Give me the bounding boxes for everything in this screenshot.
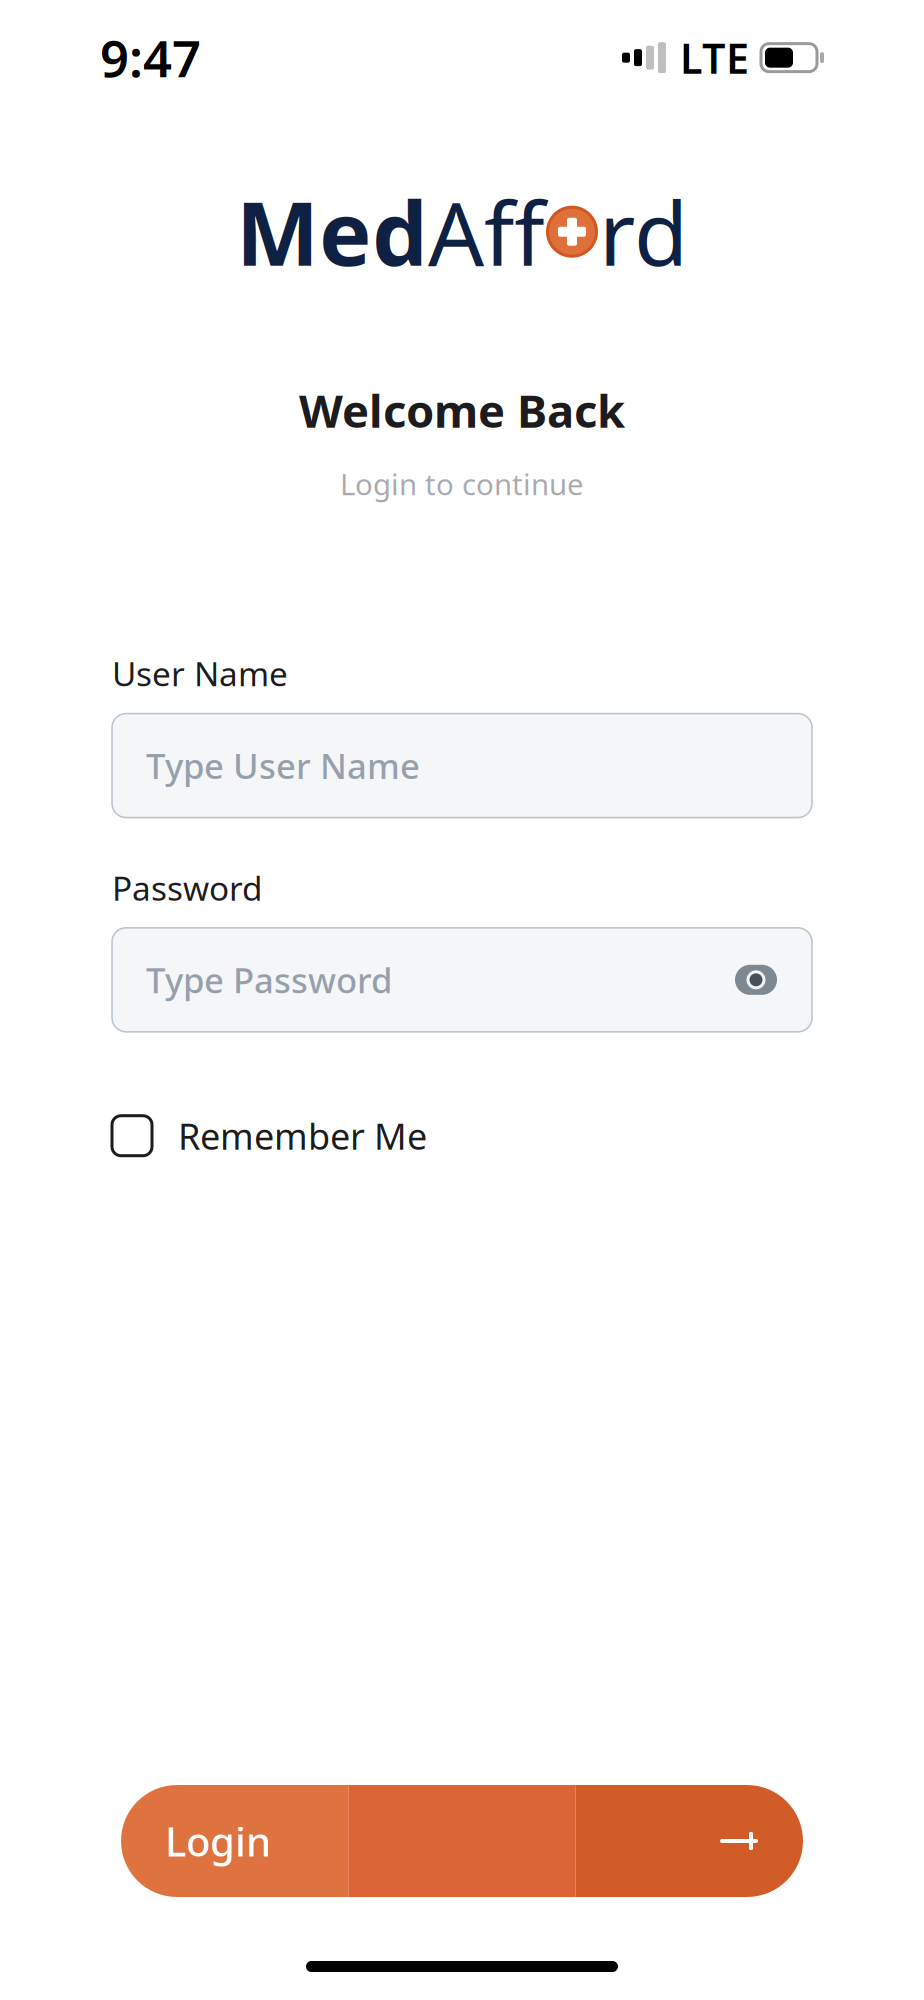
button[interactable]: Login — [121, 1785, 803, 1897]
staticText: rd — [599, 173, 688, 290]
staticText: User Name — [112, 651, 288, 696]
staticText: Type User Name — [146, 742, 420, 788]
button[interactable]: Type User Name — [112, 714, 812, 818]
staticText: Login — [165, 1814, 271, 1867]
button[interactable]: Remember Me — [112, 1104, 427, 1168]
button[interactable]: Type Password — [112, 928, 812, 1032]
staticText: Med — [236, 173, 428, 290]
staticText: Password — [112, 866, 263, 910]
staticText: 9:47 — [100, 24, 201, 91]
staticText: Aff — [428, 173, 545, 290]
staticText: Login to continue — [340, 464, 584, 503]
staticText: LTE — [680, 30, 749, 85]
staticText: Remember Me — [178, 1112, 427, 1160]
staticText: Welcome Back — [299, 380, 625, 440]
staticText: Type Password — [146, 957, 392, 1003]
